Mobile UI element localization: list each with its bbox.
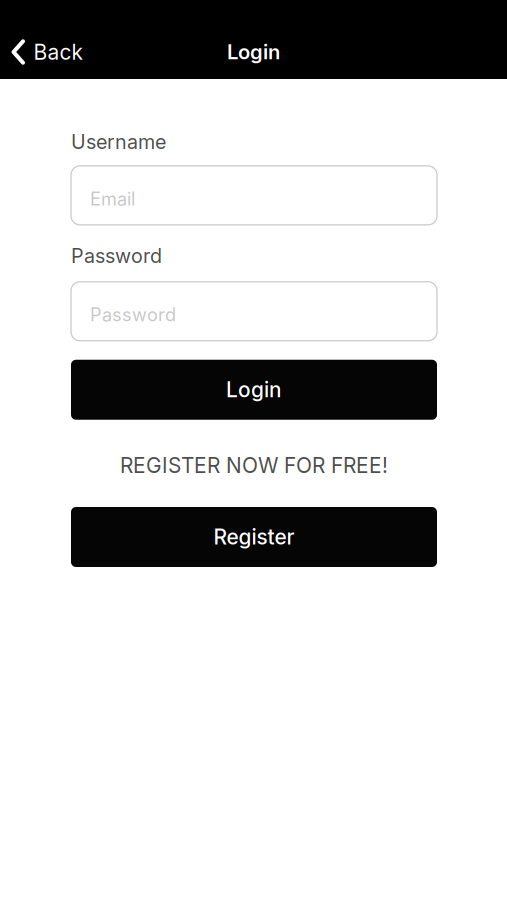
- staticText: Register: [213, 524, 294, 550]
- staticText: Email: [90, 188, 135, 210]
- staticText: Password: [71, 244, 162, 268]
- staticText: Username: [71, 130, 166, 154]
- staticText: Password: [90, 304, 176, 326]
- button[interactable]: Back: [0, 25, 96, 79]
- staticText: Login: [226, 377, 282, 402]
- button[interactable]: Email: [71, 166, 437, 225]
- staticText: REGISTER NOW FOR FREE!: [120, 453, 388, 478]
- button[interactable]: Password: [71, 282, 437, 341]
- staticText: Back: [33, 39, 82, 65]
- button[interactable]: Login: [71, 360, 437, 420]
- staticText: Login: [227, 40, 280, 64]
- button[interactable]: Register: [71, 507, 437, 567]
